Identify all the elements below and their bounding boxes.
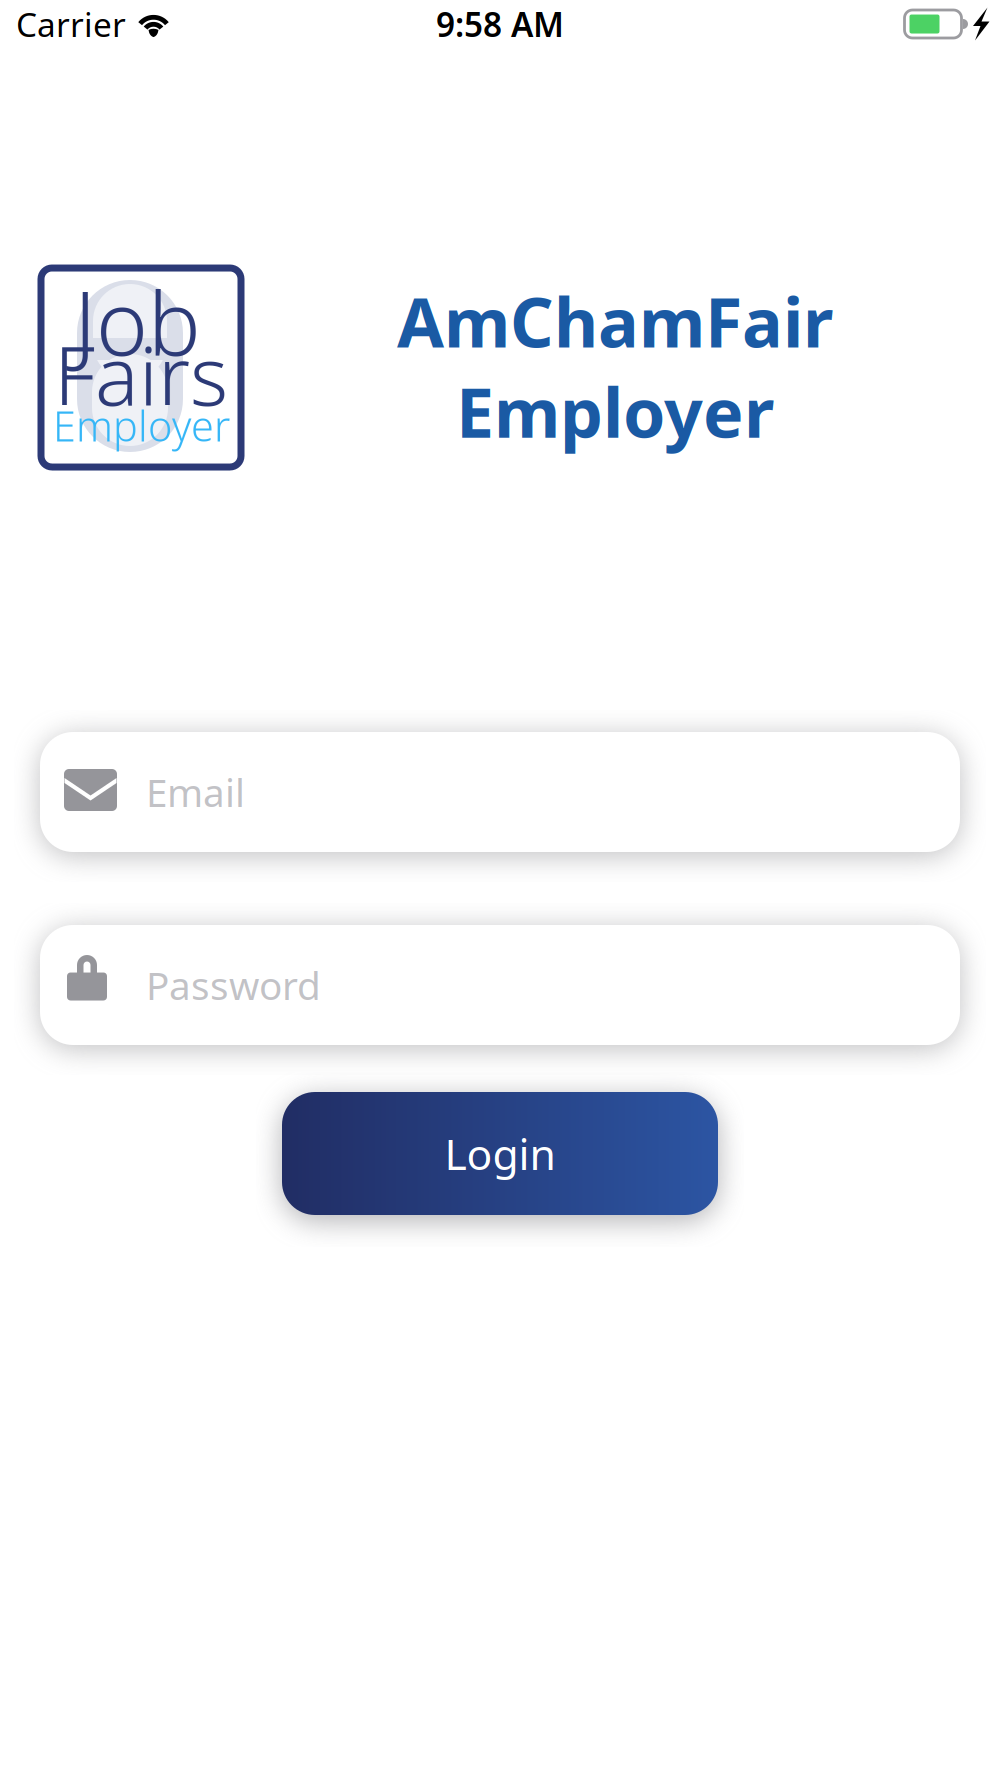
button[interactable]: Login [282,1092,718,1215]
staticText: AmChamFair [397,276,833,366]
staticText: Fairs [54,320,228,428]
staticText: Employer [456,366,774,457]
staticText: 9:58 AM [436,2,564,46]
button[interactable]: Email [40,732,960,852]
staticText: Job [74,263,201,380]
staticText: Email [146,766,245,818]
staticText: Employer [53,398,230,453]
staticText: Password [146,959,321,1011]
button[interactable]: Password [40,925,960,1045]
staticText: Carrier [16,2,126,46]
staticText: Login [444,1125,555,1182]
